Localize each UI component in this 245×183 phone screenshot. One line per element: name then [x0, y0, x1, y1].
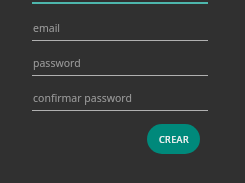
button[interactable]: email: [32, 21, 208, 41]
staticText: password: [33, 56, 81, 70]
staticText: CREAR: [159, 133, 189, 145]
button[interactable]: CREAR: [147, 124, 200, 154]
staticText: confirmar password: [33, 91, 132, 105]
button[interactable]: password: [32, 56, 208, 76]
button[interactable]: confirmar password: [32, 91, 208, 111]
staticText: email: [33, 21, 61, 35]
